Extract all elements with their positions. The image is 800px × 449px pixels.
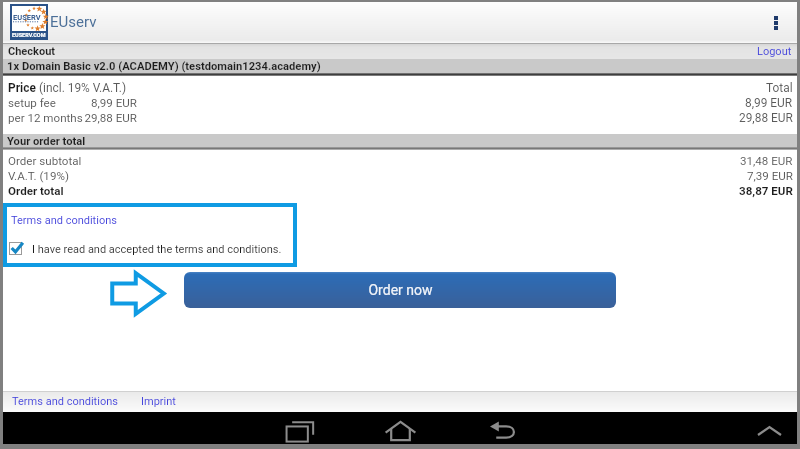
- staticText: Checkout: [8, 45, 56, 58]
- staticText: Imprint: [141, 395, 176, 408]
- staticText: 38,87 EUR: [739, 184, 793, 198]
- staticText: Your order total: [7, 135, 86, 148]
- button[interactable]: Expand: [751, 423, 787, 439]
- staticText: Terms and conditions: [12, 395, 118, 408]
- staticText: 29,88 EUR: [81, 111, 137, 125]
- staticText: (incl. 19% V.A.T.): [39, 81, 127, 95]
- staticText: Order total: [8, 184, 64, 198]
- staticText: EUSERV: [13, 13, 41, 22]
- staticText: EUserv: [50, 13, 97, 31]
- staticText: 29,88 EUR: [739, 111, 793, 125]
- staticText: 8,99 EUR: [81, 96, 137, 110]
- staticText: Terms and conditions: [11, 214, 117, 227]
- button[interactable]: Terms and conditions: [8, 213, 120, 228]
- staticText: Logout: [757, 45, 792, 58]
- staticText: Order subtotal: [8, 154, 82, 168]
- button[interactable]: More options: [755, 2, 797, 43]
- staticText: 1x Domain Basic v2.0 (ACADEMY) (testdoma…: [7, 60, 321, 73]
- button[interactable]: Recent apps: [278, 418, 322, 444]
- staticText: I have read and accepted the terms and c…: [32, 243, 282, 256]
- staticText: EUSERV.COM: [12, 32, 46, 38]
- staticText: per 12 months: [8, 111, 83, 125]
- staticText: Order now: [368, 282, 433, 298]
- staticText: V.A.T. (19%): [8, 169, 69, 183]
- button[interactable]: Back: [483, 418, 523, 442]
- button[interactable]: I have read and accepted the terms and c…: [9, 242, 282, 256]
- staticText: 31,48 EUR: [740, 154, 793, 168]
- button[interactable]: Terms and conditions: [9, 391, 121, 412]
- button[interactable]: Order now: [184, 272, 616, 308]
- staticText: Total: [766, 81, 793, 95]
- button[interactable]: Home: [378, 418, 422, 444]
- staticText: 8,99 EUR: [745, 96, 793, 110]
- staticText: Price: [8, 81, 39, 95]
- staticText: 7,39 EUR: [747, 169, 793, 183]
- button[interactable]: Imprint: [138, 391, 179, 412]
- other: Arrow pointing to Order now button: [110, 271, 166, 316]
- button[interactable]: Logout: [752, 44, 797, 59]
- staticText: setup fee: [8, 96, 56, 110]
